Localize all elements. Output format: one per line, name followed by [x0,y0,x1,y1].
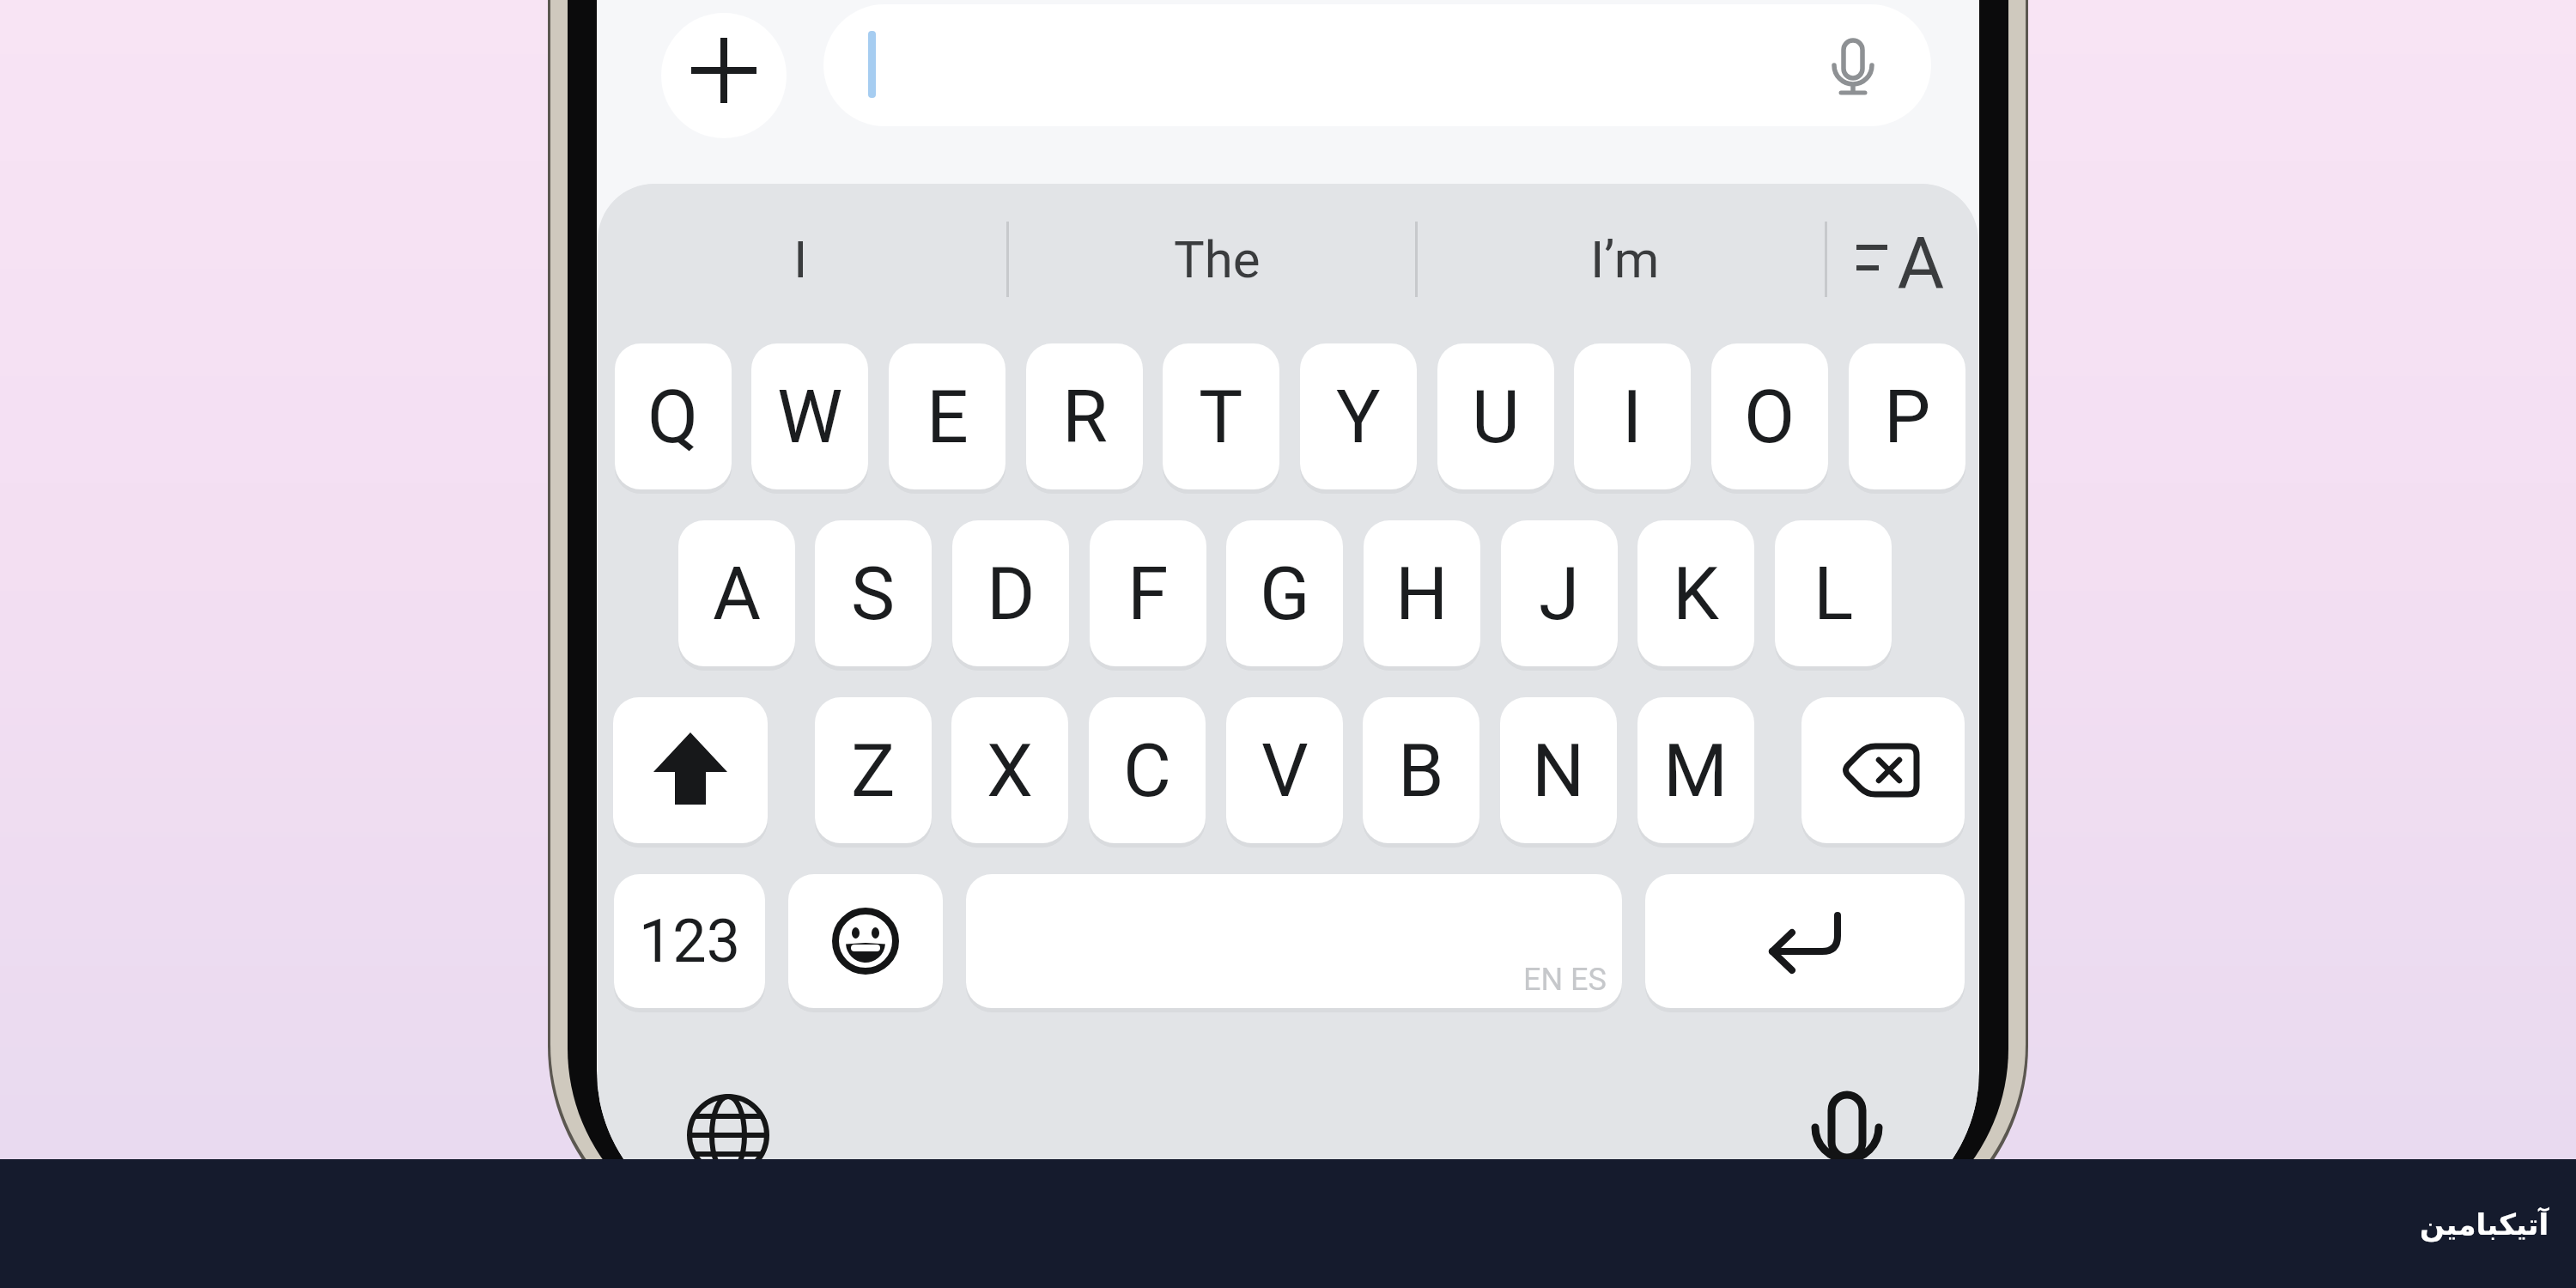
staticText: C [1123,727,1171,814]
staticText: M [1663,727,1728,814]
staticText: The [1174,229,1261,289]
staticText: N [1532,727,1585,814]
button[interactable] [1645,874,1965,1008]
staticText: V [1261,727,1309,814]
button[interactable]: Q [615,343,732,489]
button[interactable]: P [1849,343,1965,489]
button[interactable]: G [1226,520,1343,666]
button[interactable]: B [1363,697,1479,843]
staticText: O [1744,374,1795,460]
button[interactable]: W [751,343,868,489]
button[interactable]: D [952,520,1069,666]
staticText: 123 [639,906,741,976]
staticText: Z [851,727,896,814]
staticText: I [1622,374,1643,460]
staticText: W [777,374,843,460]
button[interactable]: I [1574,343,1691,489]
button[interactable]: V [1226,697,1343,843]
button[interactable]: A [1843,222,1954,297]
button[interactable]: F [1090,520,1206,666]
staticText: EN ES [1523,962,1607,998]
staticText: G [1260,550,1310,637]
button[interactable]: T [1163,343,1279,489]
button[interactable]: M [1637,697,1754,843]
staticText: I [793,229,808,289]
button[interactable]: 123 [614,874,765,1008]
staticText: S [851,550,896,637]
staticText: T [1199,374,1243,460]
button[interactable]: H [1364,520,1480,666]
button[interactable]: K [1637,520,1754,666]
button[interactable]: Y [1300,343,1417,489]
button[interactable]: U [1437,343,1554,489]
button[interactable]: C [1089,697,1206,843]
staticText: Q [647,374,699,460]
staticText: X [987,727,1033,814]
button[interactable] [681,1088,775,1182]
button[interactable] [1810,38,1896,124]
button[interactable]: EN ES [966,874,1622,1008]
button[interactable] [661,13,787,138]
staticText: A [1887,222,1954,297]
button[interactable] [788,874,943,1008]
staticText: R [1062,374,1108,460]
staticText: J [1539,550,1580,637]
staticText: آتیکبامین [2420,1207,2549,1242]
button[interactable]: J [1501,520,1618,666]
staticText: U [1472,374,1520,460]
button[interactable]: I [714,222,886,297]
button[interactable]: I’m [1539,222,1710,297]
staticText: A [713,550,762,637]
button[interactable] [1804,1083,1890,1194]
button[interactable]: Z [815,697,932,843]
button[interactable]: X [951,697,1068,843]
staticText: B [1398,727,1444,814]
button[interactable]: The [1131,222,1303,297]
button[interactable]: A [678,520,795,666]
button[interactable] [1801,697,1965,843]
staticText: Y [1336,374,1381,460]
staticText: E [927,374,969,460]
staticText: P [1884,374,1931,460]
button[interactable]: E [889,343,1005,489]
button[interactable]: R [1026,343,1143,489]
staticText: L [1814,550,1854,637]
staticText: I’m [1590,229,1660,289]
button[interactable]: L [1775,520,1892,666]
staticText: K [1673,550,1719,637]
button[interactable]: O [1711,343,1828,489]
button[interactable] [823,4,1931,126]
button[interactable]: N [1500,697,1617,843]
staticText: H [1395,550,1449,637]
button[interactable] [613,697,768,843]
staticText: F [1127,550,1169,637]
button[interactable]: S [815,520,932,666]
staticText: D [987,550,1036,637]
